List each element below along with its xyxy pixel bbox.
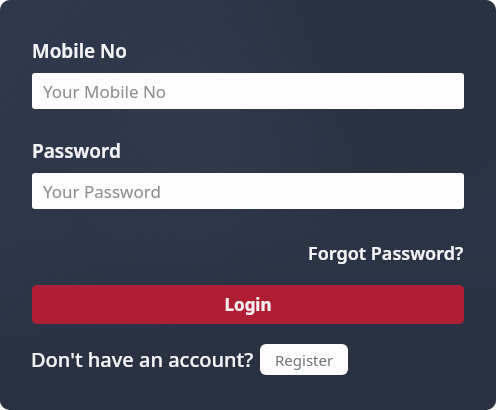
staticText: Your Password (43, 180, 161, 203)
staticText: Login (224, 293, 272, 316)
button[interactable]: Password input (32, 173, 464, 209)
staticText: Your Mobile No (43, 80, 167, 103)
staticText: Don't have an account? (31, 346, 254, 373)
button[interactable]: Register (260, 344, 348, 375)
staticText: Forgot Password? (308, 241, 464, 266)
button[interactable]: Forgot Password? (308, 239, 496, 268)
staticText: Mobile No (32, 38, 127, 64)
staticText: Password (32, 138, 121, 164)
button[interactable]: Login (32, 285, 464, 324)
staticText: Register (275, 350, 334, 370)
button[interactable]: Mobile number input (32, 73, 464, 109)
